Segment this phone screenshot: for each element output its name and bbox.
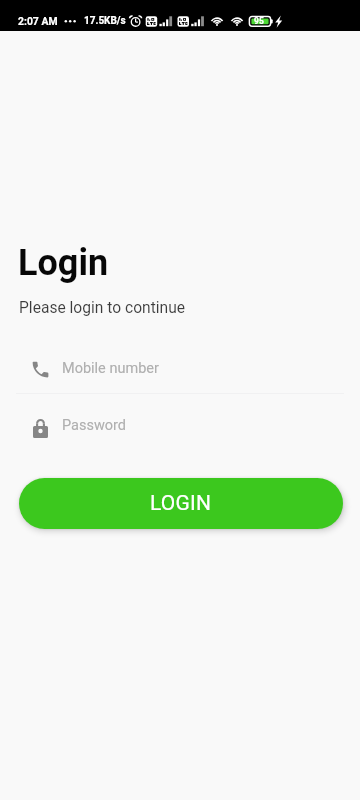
staticText: Please login to continue [19, 299, 186, 317]
staticText: 2:07 AM [18, 15, 58, 27]
button[interactable]: Mobile number [16, 348, 344, 392]
staticText: Password [62, 417, 127, 434]
staticText: LOGIN [150, 491, 212, 516]
staticText: Mobile number [62, 360, 159, 377]
staticText: 95 [254, 16, 264, 26]
staticText: Login [18, 242, 109, 284]
staticText: 17.5KB/s [84, 15, 126, 27]
button[interactable]: LOGIN [19, 478, 343, 529]
button[interactable]: Password [16, 405, 344, 449]
